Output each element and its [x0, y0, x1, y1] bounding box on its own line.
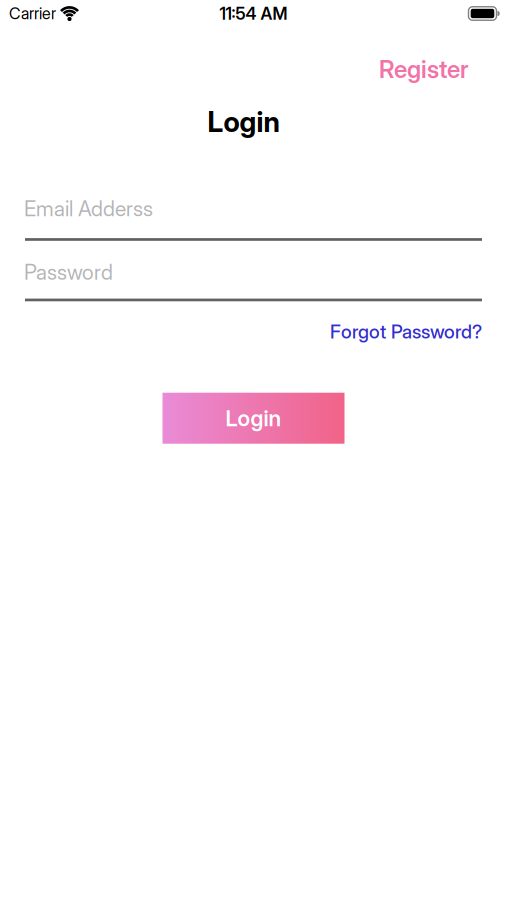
- button[interactable]: Login: [162, 393, 344, 444]
- button[interactable]: Forgot Password?: [330, 320, 482, 343]
- staticText: Email Adderss: [24, 196, 153, 221]
- staticText: Password: [24, 260, 113, 285]
- staticText: Carrier: [9, 4, 56, 23]
- staticText: Login: [207, 105, 279, 138]
- button[interactable]: Register: [379, 55, 469, 83]
- staticText: Login: [225, 405, 281, 431]
- staticText: Forgot Password?: [330, 320, 482, 343]
- staticText: Register: [379, 55, 469, 83]
- staticText: 11:54 AM: [219, 3, 287, 24]
